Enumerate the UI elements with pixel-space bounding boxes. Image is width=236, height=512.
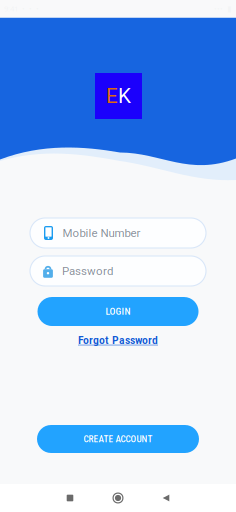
staticText: K xyxy=(118,84,131,108)
staticText: CREATE ACCOUNT xyxy=(83,433,152,444)
button[interactable]: Home xyxy=(94,484,142,512)
button[interactable]: Forgot Password xyxy=(78,333,158,347)
staticText: LOGIN xyxy=(105,306,130,317)
staticText: E xyxy=(106,84,118,108)
button[interactable]: CREATE ACCOUNT xyxy=(37,425,199,453)
staticText: Forgot Password xyxy=(78,333,158,347)
button[interactable]: Back xyxy=(142,484,190,512)
button[interactable]: LOGIN xyxy=(37,297,198,326)
staticText: Password xyxy=(62,264,113,278)
button[interactable]: Recent apps xyxy=(46,484,94,512)
staticText: Mobile Number xyxy=(62,226,140,240)
